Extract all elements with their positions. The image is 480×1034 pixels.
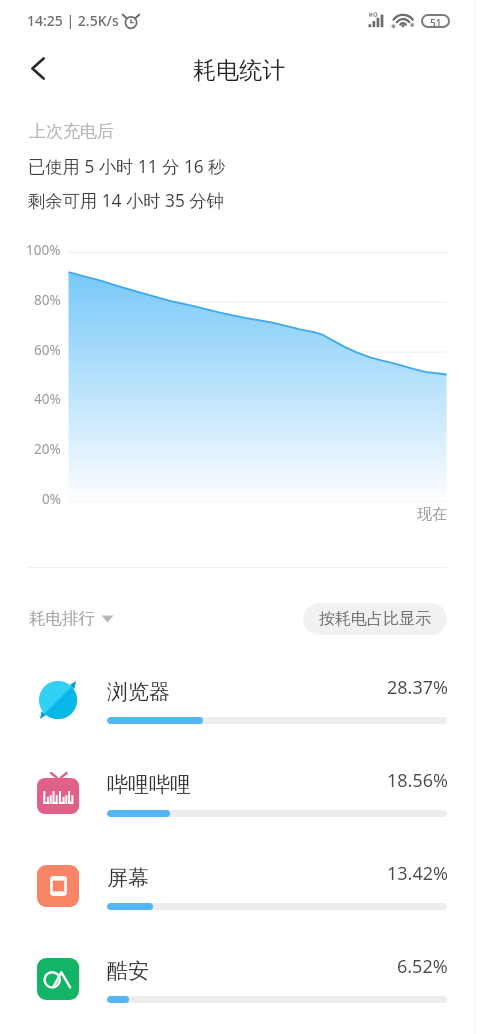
staticText: 80% [34, 291, 61, 309]
staticText: 剩余可用 14 小时 35 分钟 [28, 189, 224, 213]
staticText: 0% [42, 490, 61, 508]
staticText: 40% [34, 390, 61, 408]
staticText: 现在 [417, 505, 447, 524]
staticText: 上次充电后 [29, 121, 114, 142]
staticText: 耗电统计 [193, 56, 285, 85]
staticText: 28.37% [387, 675, 448, 700]
staticText: 已使用 5 小时 11 分 16 秒 [28, 155, 226, 179]
staticText: 14:25 | 2.5K/s [27, 11, 119, 30]
staticText: 按耗电占比显示 [319, 609, 431, 629]
staticText: 耗电排行 [29, 608, 95, 629]
button[interactable]: 哔哩哔哩 [0, 752, 480, 834]
button[interactable]: 按耗电占比显示 [303, 603, 447, 635]
staticText: 浏览器 [107, 679, 170, 705]
staticText: 哔哩哔哩 [107, 772, 191, 798]
staticText: 51 [430, 16, 442, 26]
staticText: 酷安 [107, 958, 149, 984]
staticText: 18.56% [387, 768, 448, 793]
staticText: 6.52% [397, 954, 448, 979]
button[interactable]: 酷安 [0, 938, 480, 1020]
staticText: 60% [34, 341, 61, 359]
button[interactable]: 浏览器 [0, 659, 480, 741]
button[interactable]: Back [16, 46, 60, 90]
staticText: 屏幕 [107, 865, 149, 891]
button[interactable]: 屏幕 [0, 845, 480, 927]
staticText: 13.42% [387, 861, 448, 886]
button[interactable]: 耗电排行 [29, 608, 114, 629]
staticText: 100% [26, 241, 61, 259]
staticText: 20% [34, 440, 61, 458]
